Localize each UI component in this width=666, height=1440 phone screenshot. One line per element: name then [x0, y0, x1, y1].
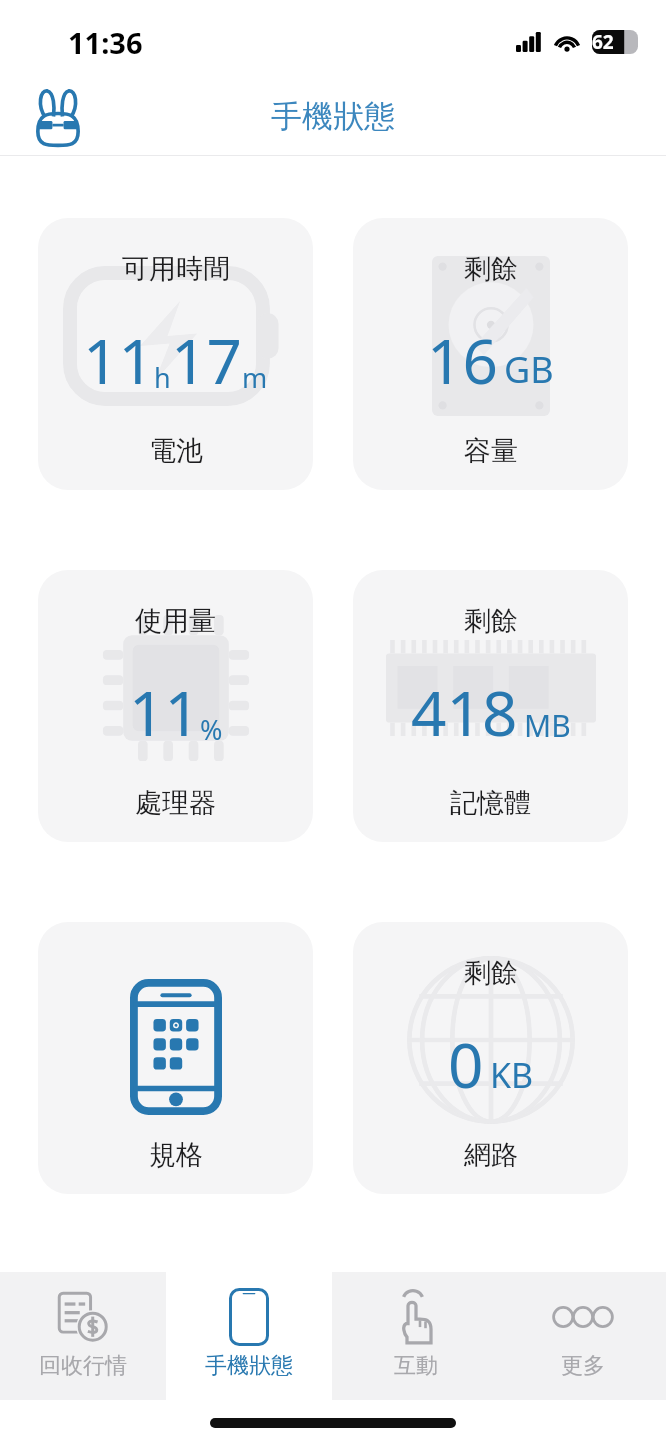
- staticText: 互動: [394, 1352, 438, 1380]
- staticText: 0: [448, 1022, 484, 1106]
- staticText: 剩餘: [464, 604, 518, 638]
- other: 互動: [391, 1289, 441, 1345]
- button[interactable]: 剩餘: [353, 570, 628, 842]
- staticText: 16: [427, 318, 498, 402]
- staticText: 規格: [149, 1138, 203, 1172]
- staticText: 電池: [149, 434, 203, 468]
- staticText: 11: [83, 318, 154, 402]
- staticText: 使用量: [135, 604, 216, 638]
- button[interactable]: 剩餘: [353, 922, 628, 1194]
- staticText: m: [242, 359, 268, 396]
- staticText: 11: [129, 670, 200, 754]
- button[interactable]: Logo: [26, 85, 90, 149]
- button[interactable]: 使用量: [38, 570, 313, 842]
- other: 手機狀態: [229, 1288, 269, 1346]
- button[interactable]: 可用時間: [38, 218, 313, 490]
- staticText: 處理器: [135, 786, 216, 820]
- button[interactable]: 更多: [499, 1272, 666, 1400]
- staticText: 更多: [561, 1352, 605, 1380]
- other: 更多: [553, 1305, 613, 1329]
- staticText: 手機狀態: [205, 1352, 293, 1380]
- staticText: 剩餘: [464, 956, 518, 990]
- staticText: 網路: [464, 1138, 518, 1172]
- staticText: 手機狀態: [271, 97, 395, 136]
- button[interactable]: 剩餘: [353, 218, 628, 490]
- staticText: GB: [504, 345, 554, 394]
- staticText: %: [200, 711, 223, 748]
- button[interactable]: 回收行情: [0, 1272, 166, 1400]
- staticText: 回收行情: [39, 1352, 127, 1380]
- staticText: 11:36: [68, 23, 143, 62]
- staticText: 剩餘: [464, 252, 518, 286]
- staticText: 容量: [464, 434, 518, 468]
- staticText: 17: [171, 318, 242, 402]
- other: 回收行情: [56, 1290, 110, 1344]
- staticText: h: [154, 359, 171, 396]
- staticText: 可用時間: [122, 252, 230, 286]
- staticText: 62: [592, 29, 614, 55]
- button[interactable]: 規格: [38, 922, 313, 1194]
- staticText: 418: [411, 670, 518, 754]
- staticText: KB: [490, 1052, 534, 1098]
- button[interactable]: 互動: [332, 1272, 499, 1400]
- staticText: 記憶體: [450, 786, 531, 820]
- button[interactable]: 手機狀態: [166, 1272, 332, 1400]
- staticText: MB: [524, 705, 571, 746]
